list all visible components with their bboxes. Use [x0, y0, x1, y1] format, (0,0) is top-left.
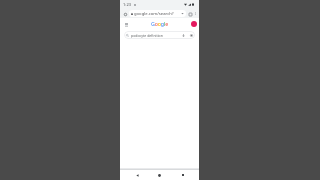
staticText: 1:23	[123, 2, 131, 7]
button[interactable]: Reload	[122, 11, 128, 17]
button[interactable]: Back	[132, 170, 143, 180]
button[interactable]: podocyte definition	[124, 31, 195, 39]
button[interactable]: google.com/search?	[129, 10, 186, 17]
button[interactable]: More options	[193, 11, 198, 16]
button[interactable]: Recent apps	[177, 170, 188, 180]
button[interactable]: Tabs	[187, 11, 193, 17]
staticText: podocyte definition	[131, 33, 163, 38]
staticText: google.com/search?	[134, 11, 174, 17]
button[interactable]: Home	[154, 170, 165, 180]
button[interactable]: Google Account	[191, 21, 197, 27]
button[interactable]: Menu	[123, 21, 130, 28]
staticText: Google	[151, 20, 169, 27]
